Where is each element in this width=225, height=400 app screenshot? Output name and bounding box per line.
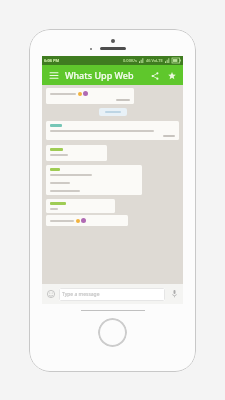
button[interactable]: Emoji	[45, 288, 57, 300]
button[interactable]	[46, 215, 128, 226]
staticText: 46 VoLTE	[146, 58, 163, 63]
staticText: Type a message	[62, 291, 100, 298]
button[interactable]: Voice message	[168, 288, 180, 300]
staticText: Whats Upp Web	[65, 69, 134, 81]
button[interactable]	[46, 165, 142, 195]
button[interactable]	[99, 108, 127, 116]
button[interactable]: Rate app	[165, 69, 178, 82]
button[interactable]: Type a message	[59, 288, 165, 301]
button[interactable]	[46, 121, 179, 140]
staticText: 0.00K/s	[123, 58, 137, 63]
button[interactable]: Share	[148, 69, 161, 82]
staticText: 6:06 PM	[44, 58, 60, 63]
button[interactable]	[46, 199, 115, 213]
button[interactable]	[46, 145, 107, 161]
button[interactable]	[46, 88, 134, 104]
button[interactable]: Menu	[47, 69, 60, 82]
